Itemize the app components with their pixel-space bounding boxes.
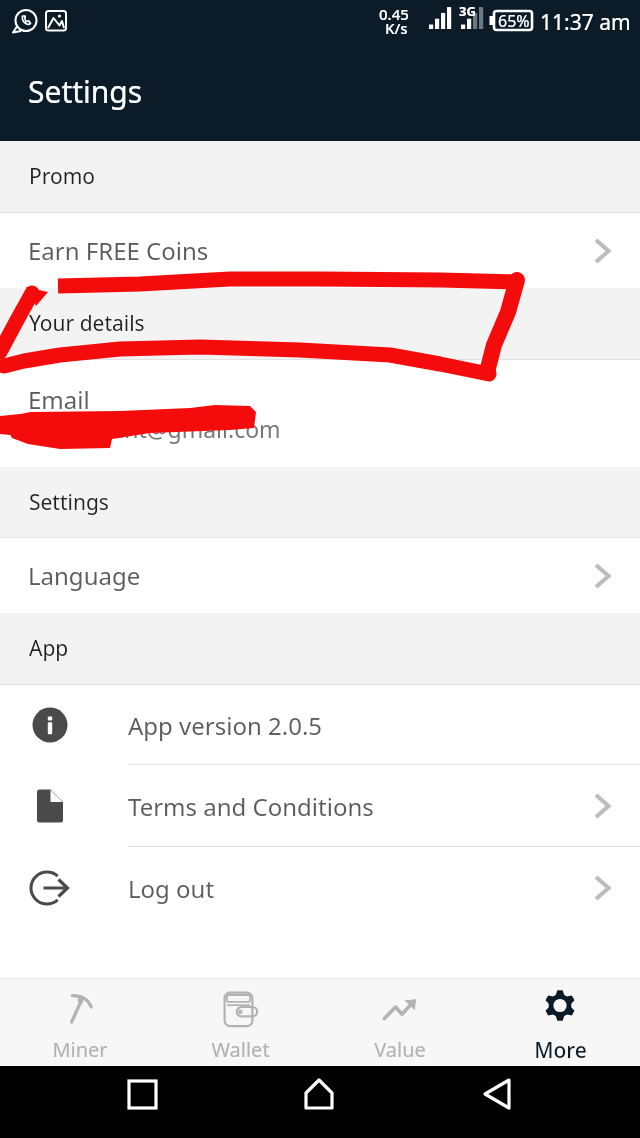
staticText: Settings <box>28 71 143 112</box>
button[interactable]: Language <box>0 538 640 613</box>
button[interactable]: Earn FREE Coins <box>0 213 640 288</box>
staticText: Your details <box>29 309 145 338</box>
staticText: Email <box>28 383 90 416</box>
staticText: Settings <box>29 488 109 517</box>
staticText: Earn FREE Coins <box>28 234 594 267</box>
button[interactable]: Wallet <box>160 979 320 1066</box>
staticText: 3G <box>459 2 476 20</box>
staticText: Terms and Conditions <box>128 790 594 823</box>
staticText: myaccount@gmail.com <box>28 413 281 444</box>
staticText: Language <box>28 559 594 592</box>
staticText: Log out <box>128 872 594 905</box>
staticText: 11:37 am <box>540 8 631 37</box>
staticText: Wallet <box>211 1036 270 1063</box>
button[interactable]: Value <box>320 979 480 1066</box>
staticText: App version 2.0.5 <box>128 709 594 742</box>
button[interactable]: Log out <box>0 847 640 929</box>
button[interactable]: More <box>480 979 640 1066</box>
button[interactable]: Miner <box>0 979 160 1066</box>
staticText: 65% <box>498 10 530 32</box>
button[interactable]: Terms and Conditions <box>0 765 640 847</box>
staticText: Miner <box>52 1036 108 1063</box>
button[interactable]: Email <box>0 360 640 467</box>
staticText: K/s <box>385 18 408 38</box>
staticText: Promo <box>29 162 96 191</box>
staticText: App <box>29 634 69 663</box>
button[interactable]: App version 2.0.5 <box>0 685 640 765</box>
staticText: 0.45 <box>379 4 409 24</box>
staticText: More <box>534 1036 587 1065</box>
staticText: Value <box>374 1036 426 1063</box>
